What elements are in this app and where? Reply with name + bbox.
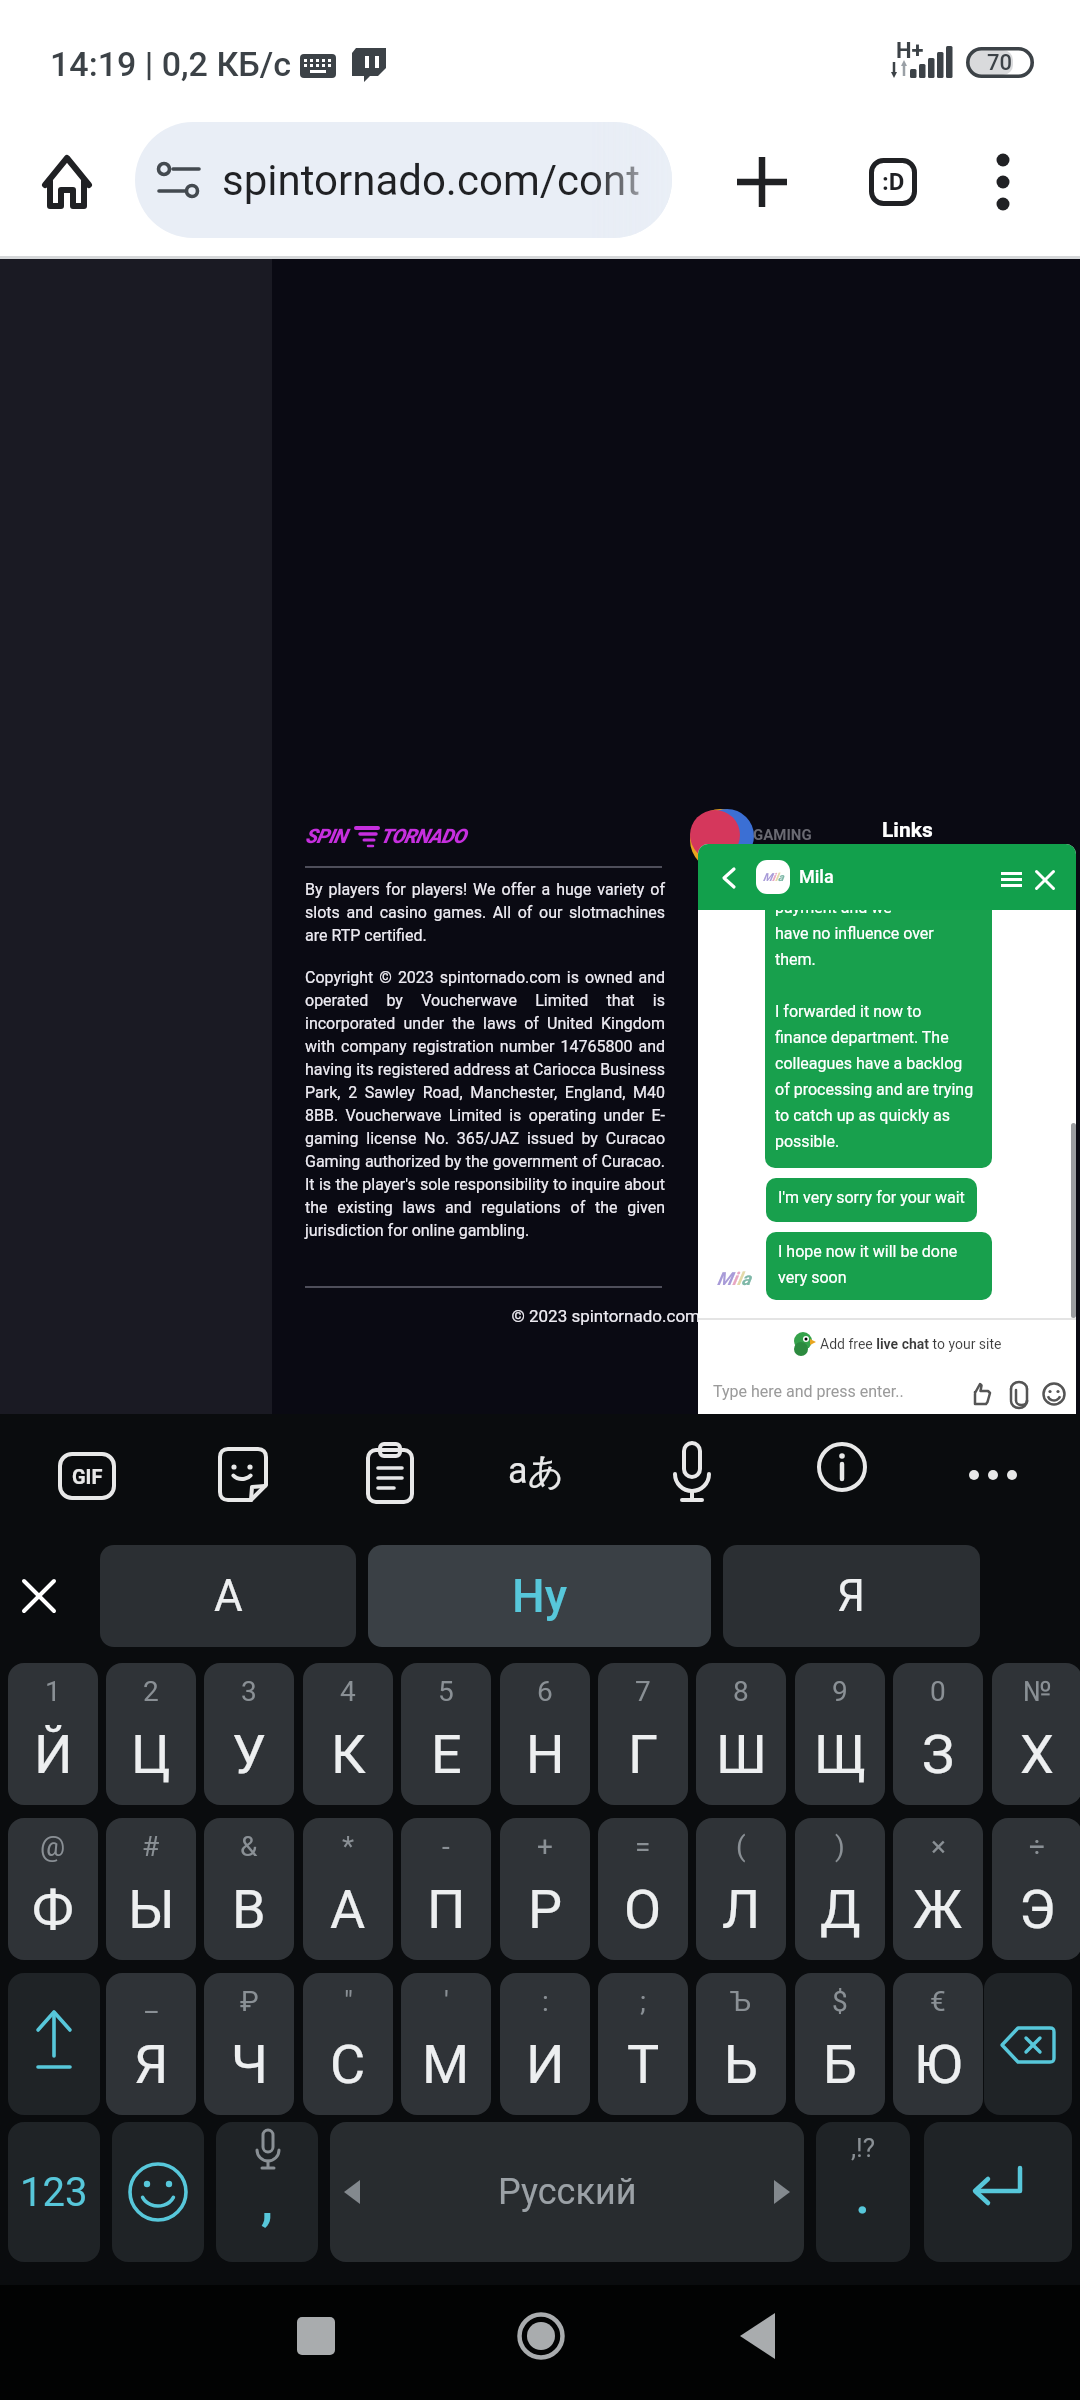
staticText: Х [1020,1723,1054,1786]
staticText: У [232,1723,266,1786]
staticText: By players for players! We offer a huge … [305,880,665,945]
staticText: ' [444,1985,449,2018]
staticText: 1 [45,1675,61,1708]
staticText: " [344,1985,353,2018]
staticText: Ъ [730,1985,752,2018]
staticText: 123 [20,2169,88,2216]
staticText: & [240,1830,258,1863]
staticText: 3 [241,1675,257,1708]
staticText: 8 [733,1675,749,1708]
staticText: ) [835,1830,845,1863]
staticText: Mila [799,866,834,887]
staticText: Type here and press enter.. [713,1382,904,1401]
staticText: TORNADO [380,824,466,847]
staticText: spintornado.com/cont [222,156,640,205]
staticText: Н [526,1723,565,1786]
staticText: Г [628,1723,659,1786]
staticText: 9 [832,1675,848,1708]
staticText: _ [145,1985,158,2018]
staticText: Т [627,2033,660,2096]
staticText: Русский [498,2171,637,2213]
staticText: = [635,1830,651,1863]
staticText: 14:19 | 0,2 КБ/с [50,44,291,84]
staticText: Mila [717,1268,751,1289]
staticText: ₽ [240,1985,259,2018]
staticText: Э [1019,1878,1056,1941]
staticText: SPIN [305,824,347,847]
staticText: Add free live chat to your site [820,1336,1002,1352]
staticText: 4 [340,1675,356,1708]
staticText: :D [882,168,905,196]
staticText: П [427,1878,466,1941]
staticText: © 2023 spintornado.com [440,1306,700,1326]
staticText: € [930,1985,946,2018]
staticText: 6 [537,1675,553,1708]
staticText: Ш [716,1723,767,1786]
staticText: @ [40,1830,66,1863]
staticText: Р [528,1878,563,1941]
staticText: Д [820,1878,861,1941]
staticText: , [261,2169,273,2232]
staticText: 5 [438,1675,454,1708]
staticText: I hope now it will be done very soon [778,1242,958,1286]
staticText: № [1023,1675,1052,1708]
staticText: Щ [814,1723,867,1786]
staticText: ( [736,1830,746,1863]
staticText: + [537,1830,553,1863]
staticText: 2 [143,1675,159,1708]
staticText: * [342,1830,355,1863]
staticText: Ю [914,2033,963,2096]
staticText: А [330,1878,366,1941]
staticText: Л [722,1878,761,1941]
staticText: Mila [763,871,784,884]
staticText: И [526,2033,565,2096]
staticText: : [542,1985,549,2018]
staticText: I'm very sorry for your wait [778,1188,965,1207]
staticText: А [214,1570,243,1622]
staticText: Ч [231,2033,268,2096]
staticText: $ [832,1985,848,2018]
staticText: # [142,1830,160,1863]
staticText: Ы [128,1878,175,1941]
staticText: ÷ [1029,1830,1045,1863]
staticText: З [922,1723,955,1786]
staticText: Ф [32,1878,74,1941]
staticText: М [422,2033,470,2096]
staticText: В [232,1878,266,1941]
staticText: О [624,1878,662,1941]
staticText: GAMING [753,826,812,844]
staticText: 0 [930,1675,946,1708]
staticText: Я [134,2033,169,2096]
staticText: . [855,2163,871,2226]
staticText: GIF [72,1465,103,1488]
staticText: Б [823,2033,858,2096]
staticText: aあ [508,1448,565,1493]
staticText: Links [882,818,933,843]
staticText: payment and we have no influence over th… [775,898,974,1150]
staticText: Я [837,1570,866,1622]
staticText: К [331,1723,366,1786]
staticText: Е [431,1723,462,1786]
staticText: С [330,2033,366,2096]
staticText: Ц [131,1723,171,1786]
staticText: ,!? [851,2133,876,2163]
staticText: Copyright © 2023 spintornado.com is owne… [305,968,665,1240]
staticText: Ж [913,1878,963,1941]
staticText: 70 [987,50,1013,76]
staticText: ; [640,1985,646,2018]
staticText: Ну [512,1569,568,1623]
staticText: 7 [635,1675,651,1708]
staticText: Й [34,1723,73,1786]
staticText: - [442,1830,450,1863]
staticText: × [931,1830,946,1863]
staticText: H+ [896,38,924,64]
staticText: Ь [724,2033,758,2096]
